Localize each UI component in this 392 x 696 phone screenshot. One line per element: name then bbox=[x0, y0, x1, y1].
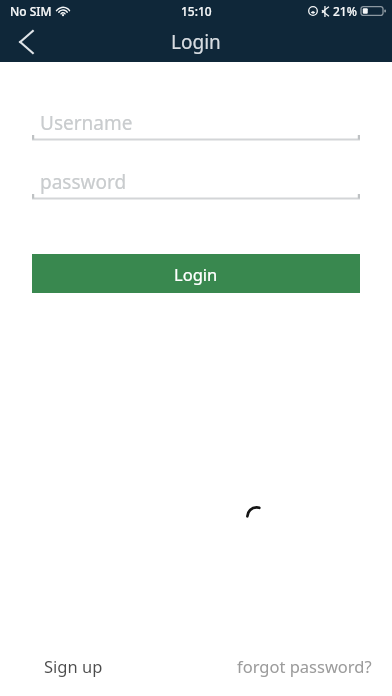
button[interactable]: Login bbox=[32, 254, 360, 293]
staticText: Sign up bbox=[44, 655, 103, 677]
button[interactable]: Username bbox=[32, 110, 360, 143]
staticText: 15:10 bbox=[181, 3, 212, 19]
button[interactable]: Sign up bbox=[38, 648, 109, 684]
staticText: Login bbox=[171, 29, 221, 55]
staticText: Username bbox=[40, 110, 133, 136]
button[interactable]: forgot password? bbox=[231, 648, 378, 684]
button[interactable]: Back bbox=[4, 22, 48, 62]
staticText: 21% bbox=[333, 3, 357, 19]
staticText: password bbox=[40, 169, 127, 195]
staticText: Login bbox=[174, 263, 218, 285]
button[interactable]: password bbox=[32, 169, 360, 202]
staticText: forgot password? bbox=[237, 655, 372, 677]
staticText: No SIM bbox=[10, 3, 52, 19]
